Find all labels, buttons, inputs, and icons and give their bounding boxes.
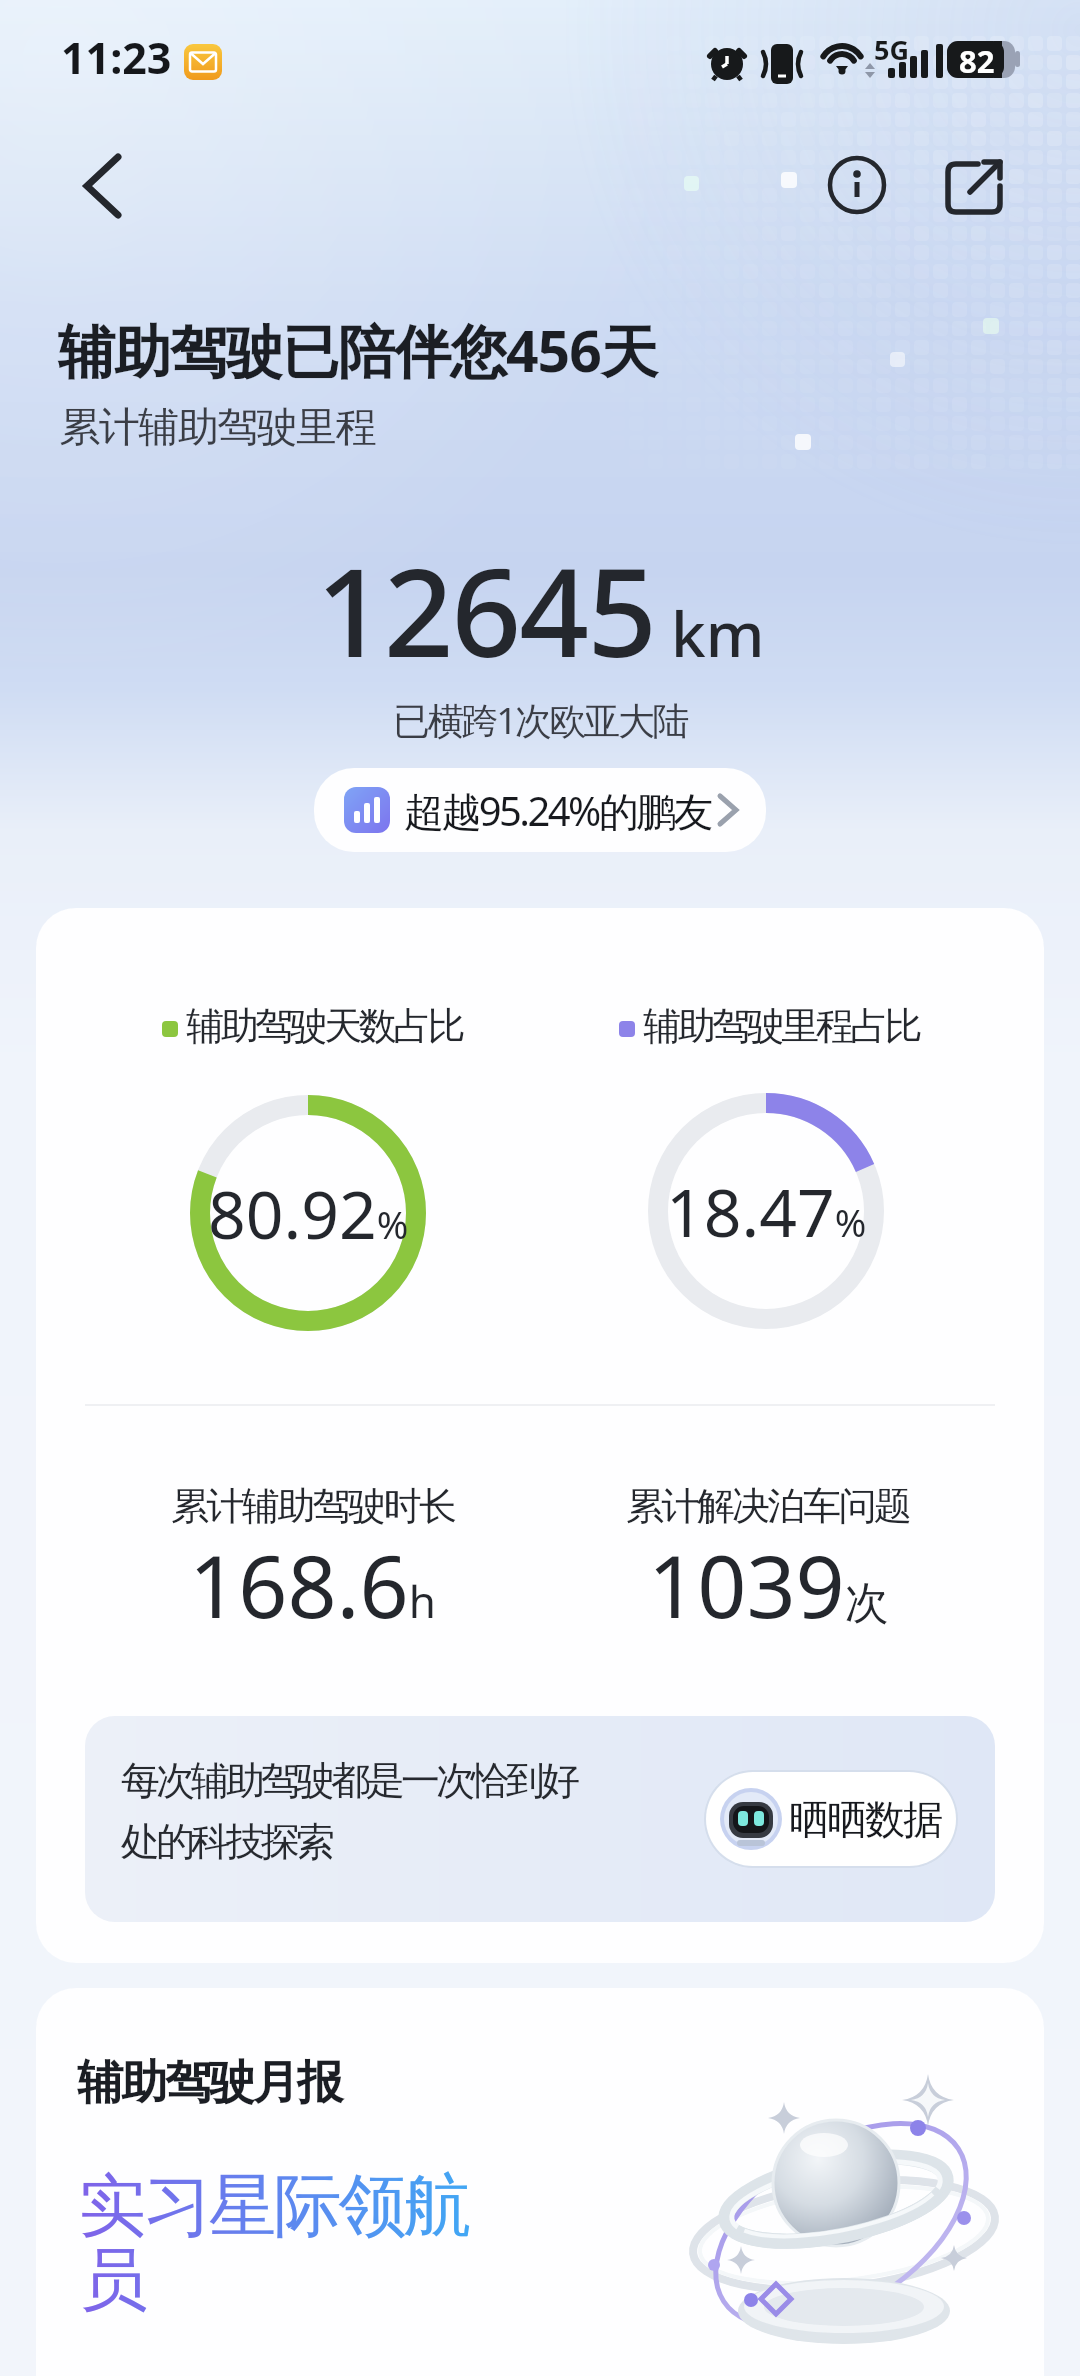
staticText: 168.6h xyxy=(189,1526,437,1642)
staticText: 每次辅助驾驶都是一次恰到好 xyxy=(123,1756,578,1805)
staticText: 晒晒数据 xyxy=(790,1794,942,1844)
staticText: 实习星际领航 员 xyxy=(80,2164,470,2323)
staticText: 1039次 xyxy=(648,1526,889,1642)
button[interactable] xyxy=(940,152,1010,218)
button[interactable] xyxy=(36,1988,1044,2376)
staticText: 82 xyxy=(959,40,995,82)
staticText: 累计辅助驾驶时长 xyxy=(171,1482,455,1530)
staticText: 12645 km xyxy=(316,527,765,693)
button[interactable]: 超越95.24%的鹏友 xyxy=(314,768,766,852)
staticText: 80.92% xyxy=(208,1168,409,1258)
staticText: 辅助驾驶已陪伴您456天 xyxy=(58,311,657,389)
button[interactable] xyxy=(60,140,150,230)
staticText: 18.47% xyxy=(666,1166,867,1256)
staticText: 超越95.24%的鹏友 xyxy=(404,783,711,838)
staticText: 累计辅助驾驶里程 xyxy=(60,402,376,454)
staticText: 11:23 xyxy=(61,28,172,87)
staticText: 已横跨1次欧亚大陆 xyxy=(393,694,687,745)
staticText: 辅助驾驶月报 xyxy=(78,2054,342,2112)
staticText: 处的科技探索 xyxy=(123,1817,333,1866)
button[interactable]: 晒晒数据 xyxy=(706,1772,956,1866)
staticText: 辅助驾驶天数占比 xyxy=(188,1002,464,1050)
staticText: 5G xyxy=(874,31,909,68)
button[interactable] xyxy=(824,152,890,218)
staticText: 辅助驾驶里程占比 xyxy=(645,1002,921,1050)
staticText: 累计解决泊车问题 xyxy=(626,1482,910,1530)
